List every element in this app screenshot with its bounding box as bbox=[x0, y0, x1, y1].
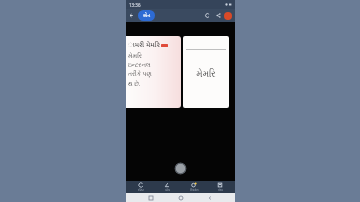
button[interactable]: Back bbox=[205, 193, 215, 202]
button[interactable]: Recents bbox=[146, 193, 156, 202]
button[interactable]: Share bbox=[213, 10, 224, 21]
button[interactable]: સેવ bbox=[208, 181, 232, 193]
staticText: થ છે. bbox=[128, 80, 141, 88]
staticText: સેવ bbox=[218, 189, 223, 192]
button[interactable]: રોટેટ bbox=[129, 181, 153, 193]
staticText: ઇન્ટરનલ bbox=[128, 62, 151, 68]
button[interactable]: ક્રોપ bbox=[155, 181, 179, 193]
button[interactable]: રિસ્કેન bbox=[182, 181, 206, 193]
staticText: મેમરિ bbox=[128, 53, 143, 60]
button[interactable]: ામરી મેમરિ bbox=[126, 36, 181, 108]
button[interactable]: Rotate bbox=[202, 10, 213, 21]
button[interactable]: મેમરિ bbox=[183, 36, 229, 108]
button[interactable]: Account bbox=[224, 12, 232, 20]
staticText: ામરી મેમરિ bbox=[128, 39, 160, 51]
staticText: રોટેટ bbox=[138, 189, 144, 192]
button[interactable]: Capture bbox=[174, 162, 187, 175]
button[interactable]: સ્કેન bbox=[138, 10, 155, 21]
staticText: ક્રોપ bbox=[165, 189, 170, 192]
staticText: તરીકે પણ bbox=[128, 70, 152, 78]
staticText: રિસ્કેન bbox=[190, 189, 199, 192]
staticText: સ્કેન bbox=[143, 12, 150, 19]
button[interactable]: Back bbox=[126, 10, 137, 21]
staticText: 13:36 bbox=[129, 2, 141, 8]
staticText: મેમરિ bbox=[196, 70, 216, 79]
button[interactable]: Home bbox=[176, 193, 186, 202]
